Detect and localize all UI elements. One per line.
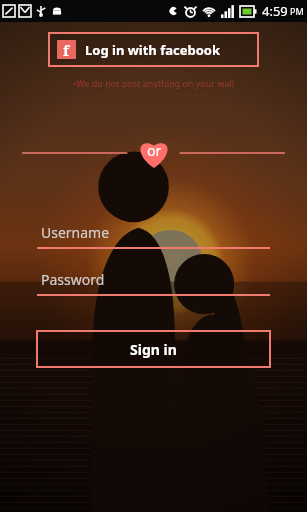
staticText: or [147,141,162,160]
staticText: 4:59 [262,2,288,20]
button[interactable]: Username [37,223,270,249]
button[interactable]: Sign in [37,331,270,367]
staticText: Sign in [130,340,177,359]
staticText: Password [41,270,105,289]
staticText: Username [41,223,110,242]
staticText: Log in with facebook [85,41,221,59]
staticText: PM [290,5,304,17]
staticText: •We do not post anything on your wall [0,77,307,89]
button[interactable]: f [49,33,258,66]
staticText: f [63,40,70,59]
button[interactable]: Password [37,270,270,296]
